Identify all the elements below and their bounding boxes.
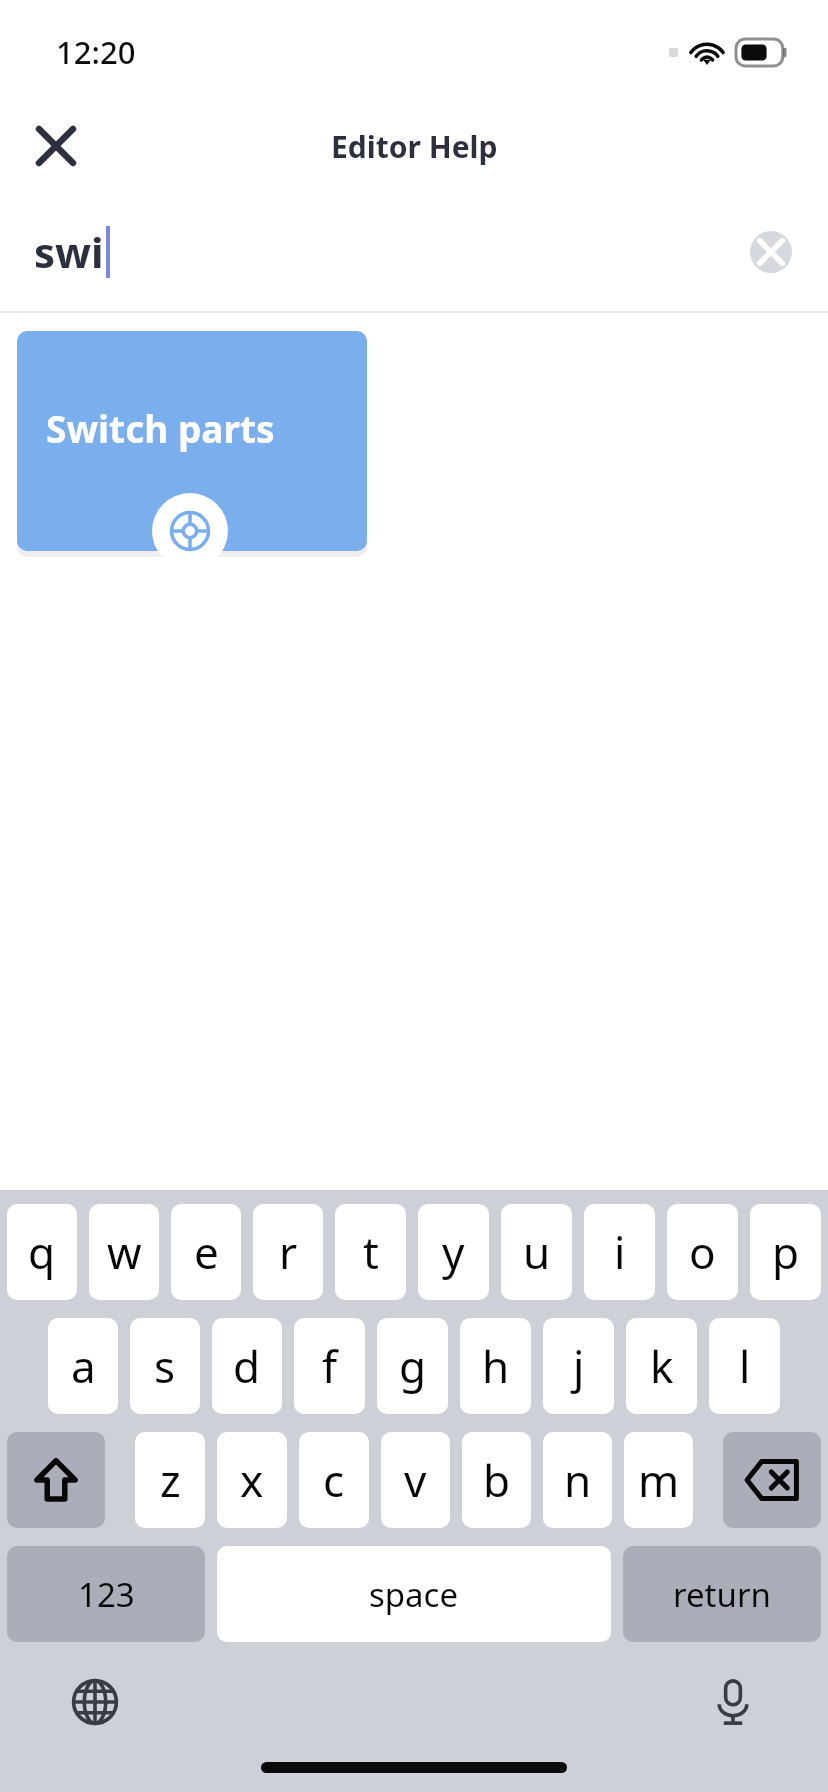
staticText: swi [34,223,104,280]
staticText: space [369,1572,459,1617]
button[interactable]: w [89,1204,159,1300]
staticText: o [689,1222,716,1282]
button[interactable]: y [418,1204,489,1300]
button[interactable]: v [381,1432,450,1528]
staticText: t [363,1222,379,1282]
button[interactable]: Close [18,108,94,184]
button[interactable]: Change keyboard language [56,1663,134,1741]
button[interactable]: Shift [7,1432,105,1528]
button[interactable]: 123 [7,1546,205,1642]
button[interactable]: q [7,1204,77,1300]
button[interactable]: return [623,1546,821,1642]
staticText: m [638,1450,680,1510]
button[interactable]: b [462,1432,531,1528]
button[interactable]: k [626,1318,697,1414]
staticText: s [154,1336,176,1396]
button[interactable]: g [377,1318,448,1414]
button[interactable]: o [667,1204,738,1300]
button[interactable]: p [750,1204,821,1300]
staticText: r [279,1222,298,1282]
button[interactable]: u [501,1204,572,1300]
button[interactable]: Switch parts [17,331,367,551]
button[interactable]: space [217,1546,611,1642]
button[interactable]: s [130,1318,200,1414]
button[interactable]: Backspace [723,1432,821,1528]
button[interactable]: j [543,1318,614,1414]
staticText: b [483,1450,511,1510]
button[interactable]: c [299,1432,369,1528]
staticText: y [442,1222,465,1282]
staticText: f [322,1336,338,1396]
staticText: x [240,1450,264,1510]
staticText: h [482,1336,510,1396]
staticText: g [399,1336,427,1396]
button[interactable]: z [135,1432,205,1528]
button[interactable]: i [584,1204,655,1300]
button[interactable]: t [335,1204,406,1300]
button[interactable]: Dictate [694,1663,772,1741]
button[interactable]: Help [152,493,228,569]
button[interactable]: swi [0,192,828,311]
staticText: u [523,1222,551,1282]
staticText: d [233,1336,261,1396]
staticText: p [772,1222,800,1282]
button[interactable]: l [709,1318,780,1414]
staticText: w [107,1222,142,1282]
staticText: l [739,1336,751,1396]
staticText: 123 [78,1572,135,1617]
button[interactable]: d [212,1318,282,1414]
staticText: i [614,1222,626,1282]
button[interactable]: n [543,1432,612,1528]
staticText: Switch parts [46,403,275,453]
button[interactable]: h [460,1318,531,1414]
staticText: q [28,1222,56,1282]
staticText: j [573,1336,585,1396]
staticText: z [160,1450,181,1510]
button[interactable]: r [253,1204,323,1300]
staticText: v [404,1450,427,1510]
staticText: Editor Help [331,126,498,167]
staticText: return [673,1572,771,1617]
staticText: a [71,1336,96,1396]
button[interactable]: e [171,1204,241,1300]
button[interactable]: f [294,1318,365,1414]
button[interactable]: a [48,1318,118,1414]
staticText: c [323,1450,345,1510]
button[interactable]: Clear text [742,223,800,281]
button[interactable]: m [624,1432,693,1528]
staticText: k [650,1336,674,1396]
staticText: n [564,1450,592,1510]
staticText: 12:20 [56,31,136,73]
staticText: e [194,1222,219,1282]
button[interactable]: x [217,1432,287,1528]
